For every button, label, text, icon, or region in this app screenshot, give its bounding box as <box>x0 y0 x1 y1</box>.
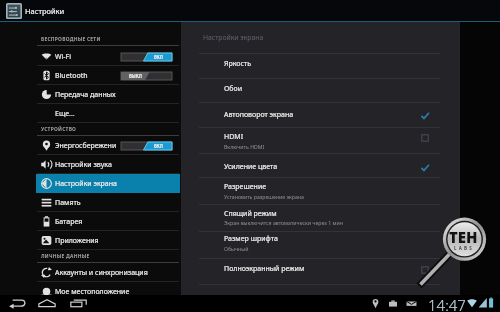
button[interactable]: Настройки экрана <box>0 174 181 193</box>
button[interactable]: Спящий режим <box>181 204 460 228</box>
staticText: HDMI <box>224 132 244 142</box>
button[interactable]: Приложения <box>0 231 181 250</box>
button[interactable]: Обои <box>181 79 460 103</box>
staticText: Установить разрешение экрана <box>224 193 304 200</box>
button[interactable]: Разрешение <box>181 177 460 201</box>
staticText: Настройки <box>25 6 65 16</box>
staticText: Спящий режим <box>224 209 277 219</box>
staticText: Энергосбережени <box>55 141 117 151</box>
staticText: TEH <box>449 227 478 247</box>
button[interactable]: Память <box>0 193 181 212</box>
staticText: Экран выключится автоматически через 1 м… <box>224 219 343 226</box>
staticText: Автоповорот экрана <box>224 110 294 120</box>
staticText: Еще... <box>55 109 75 119</box>
staticText: Батарея <box>55 217 83 227</box>
button[interactable]: Автоповорот экрана <box>181 105 460 129</box>
staticText: Bluetooth <box>55 71 88 81</box>
staticText: Приложения <box>55 236 99 246</box>
button[interactable]: Аккаунты и синхронизация <box>0 263 181 282</box>
button[interactable]: HDMI <box>181 127 460 151</box>
button[interactable]: Батарея <box>0 212 181 231</box>
button[interactable]: Back <box>4 295 28 312</box>
button[interactable]: Усиление цвета <box>181 157 460 181</box>
staticText: Разрешение <box>224 182 267 192</box>
button[interactable]: Яркость <box>181 54 460 78</box>
staticText: Полноэкранный режим <box>224 264 305 274</box>
button[interactable]: Настройки звука <box>0 155 181 174</box>
staticText: Яркость <box>224 59 251 69</box>
button[interactable]: Мое местоположение <box>0 282 181 301</box>
staticText: УСТРОЙСТВО <box>41 126 77 133</box>
staticText: Аккаунты и синхронизация <box>55 268 148 278</box>
button[interactable]: Еще... <box>0 104 181 123</box>
staticText: 14:47 <box>428 295 466 312</box>
staticText: Передача данных <box>55 90 116 100</box>
staticText: Обои <box>224 84 243 94</box>
staticText: Мое местоположение <box>55 287 130 297</box>
button[interactable]: Передача данных <box>0 85 181 104</box>
staticText: ЛИЧНЫЕ ДАННЫЕ <box>41 253 90 260</box>
staticText: Включить HDMI <box>224 143 265 150</box>
button[interactable]: Wi-Fi <box>0 47 181 66</box>
staticText: Размер шрифта <box>224 234 278 244</box>
staticText: L A B S <box>454 245 473 251</box>
button[interactable]: Размер шрифта <box>181 229 460 253</box>
button[interactable]: Bluetooth <box>0 66 181 85</box>
staticText: ВКЛ <box>154 54 163 60</box>
staticText: Настройки звука <box>55 160 112 170</box>
staticText: БЕСПРОВОДНЫЕ СЕТИ <box>41 36 101 43</box>
button[interactable]: Settings app icon <box>6 3 22 19</box>
staticText: Усиление цвета <box>224 162 278 172</box>
staticText: ВЫКЛ <box>129 73 142 79</box>
staticText: ВКЛ <box>154 143 163 149</box>
staticText: Настройки экрана <box>55 179 117 189</box>
staticText: Настройки экрана <box>203 33 264 42</box>
button[interactable]: Полноэкранный режим <box>181 259 460 283</box>
button[interactable]: Home <box>35 295 59 312</box>
staticText: Память <box>55 198 81 208</box>
staticText: Wi-Fi <box>55 52 72 62</box>
staticText: Обычный <box>224 245 249 252</box>
button[interactable]: Recent apps <box>67 295 91 312</box>
button[interactable]: Энергосбережени <box>0 136 181 155</box>
